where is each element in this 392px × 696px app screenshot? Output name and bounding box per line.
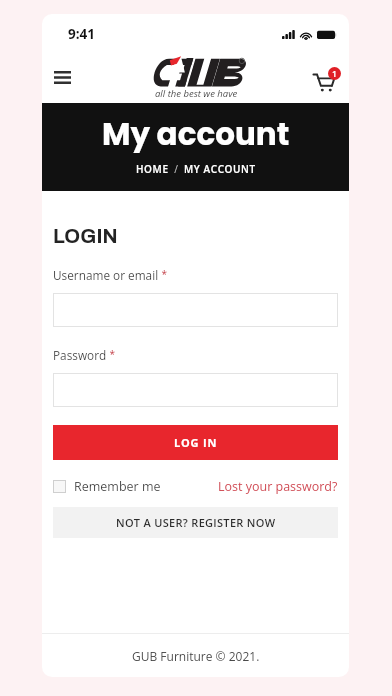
staticText: * bbox=[107, 347, 116, 361]
staticText: MY ACCOUNT bbox=[184, 162, 256, 176]
staticText: 1 bbox=[332, 68, 337, 80]
staticText: / bbox=[169, 162, 184, 176]
button[interactable]: Cart bbox=[309, 66, 339, 96]
staticText: NOT A USER? REGISTER NOW bbox=[116, 515, 276, 530]
button[interactable] bbox=[53, 293, 338, 327]
staticText: all the best we have bbox=[155, 87, 238, 100]
button[interactable]: HOME bbox=[136, 162, 169, 176]
staticText: * bbox=[159, 267, 168, 281]
staticText: LOGIN bbox=[53, 225, 118, 247]
button[interactable]: Remember me bbox=[53, 478, 161, 495]
staticText: 9:41 bbox=[68, 25, 96, 43]
staticText: GUB Furniture © 2021. bbox=[132, 648, 260, 664]
button[interactable]: LOG IN bbox=[53, 425, 338, 460]
button[interactable]: Lost your password? bbox=[218, 478, 338, 495]
button[interactable] bbox=[53, 373, 338, 407]
button[interactable]: NOT A USER? REGISTER NOW bbox=[53, 507, 338, 538]
staticText: Password bbox=[53, 347, 107, 363]
button[interactable]: Menu bbox=[47, 62, 77, 92]
staticText: Remember me bbox=[74, 478, 161, 495]
staticText: LOG IN bbox=[174, 435, 218, 450]
staticText: My account bbox=[102, 112, 290, 155]
staticText: Username or email bbox=[53, 267, 159, 283]
